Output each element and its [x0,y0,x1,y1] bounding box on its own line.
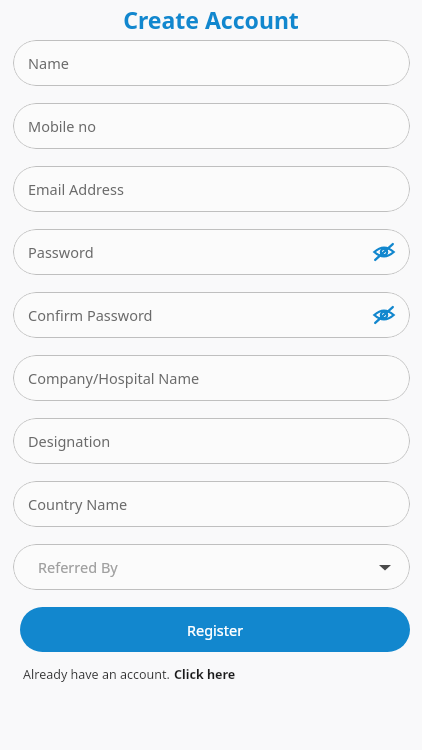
other: Open dropdown [368,550,402,584]
staticText: Email Address [28,179,124,199]
button[interactable]: Name [13,40,410,86]
staticText: Name [28,53,69,73]
staticText: Register [187,620,244,640]
staticText: Click here [174,666,236,683]
button[interactable]: Confirm Password [13,292,410,338]
button[interactable]: Mobile no [13,103,410,149]
button[interactable]: Toggle password visibility [366,234,402,270]
staticText: Country Name [28,494,128,514]
button[interactable]: Password [13,229,410,275]
staticText: Confirm Password [28,305,153,325]
button[interactable]: Designation [13,418,410,464]
staticText: Designation [28,431,111,451]
staticText: Already have an account. [23,666,170,683]
button[interactable]: Company/Hospital Name [13,355,410,401]
staticText: Password [28,242,94,262]
staticText: Company/Hospital Name [28,368,200,388]
button[interactable]: Referred By [13,544,410,590]
button[interactable]: Already have an account. [23,666,236,683]
button[interactable]: Email Address [13,166,410,212]
button[interactable]: Country Name [13,481,410,527]
button[interactable]: Register [20,607,410,652]
staticText: Mobile no [28,116,97,136]
staticText: Create Account [123,4,299,35]
button[interactable]: Toggle password visibility [366,297,402,333]
staticText: Referred By [38,557,118,577]
